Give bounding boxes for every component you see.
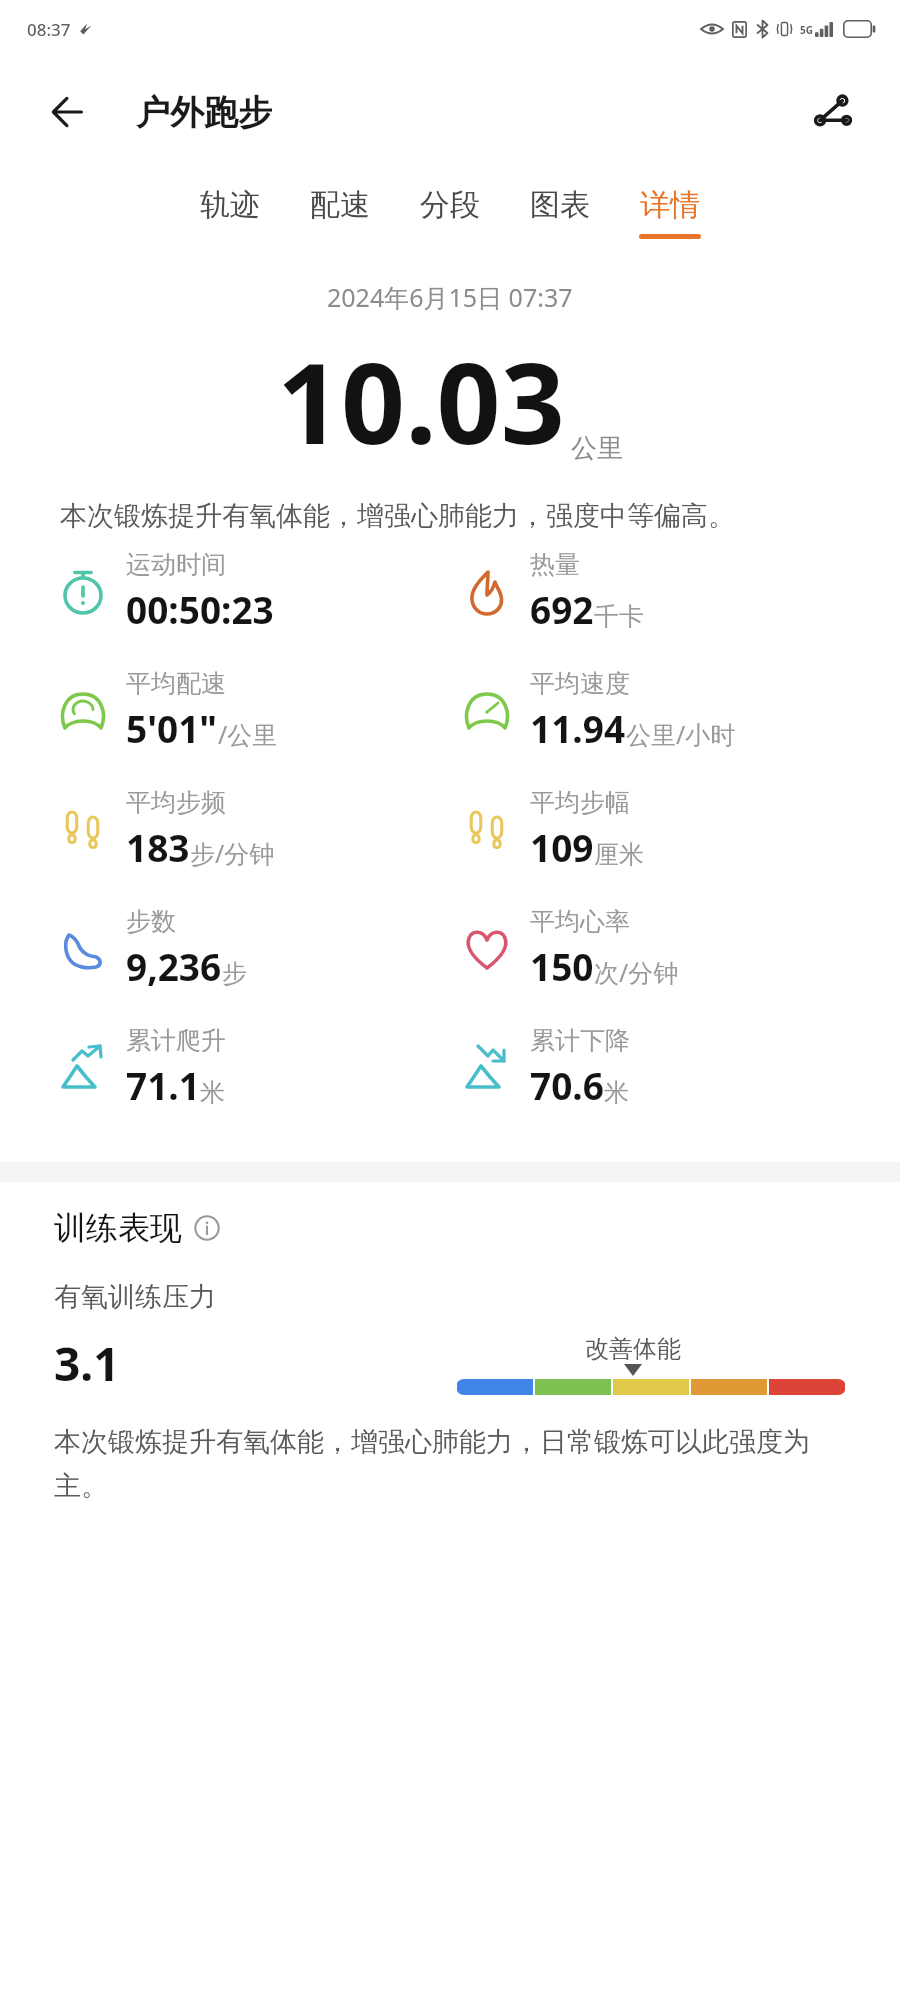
staticText: 热量	[530, 549, 580, 580]
staticText: 千卡	[594, 601, 644, 632]
staticText: 平均心率	[530, 906, 630, 937]
staticText: 2024年6月15日 07:37	[327, 280, 573, 314]
staticText: 109	[530, 822, 594, 872]
staticText: 配速	[310, 186, 370, 224]
button[interactable]: 累计下降	[458, 1025, 900, 1110]
staticText: 公里/小时	[626, 717, 736, 751]
button[interactable]: 步数	[54, 906, 450, 991]
button[interactable]: 运动时间	[54, 549, 450, 634]
staticText: 户外跑步	[136, 91, 272, 134]
button[interactable]: 热量	[458, 549, 900, 634]
staticText: 有氧训练压力	[54, 1280, 216, 1314]
staticText: 平均步频	[126, 787, 226, 818]
staticText: 公里	[571, 432, 623, 465]
button[interactable]: 分段	[395, 180, 505, 245]
button[interactable]: 平均步幅	[458, 787, 900, 872]
button[interactable]: 平均速度	[458, 668, 900, 753]
staticText: 运动时间	[126, 549, 226, 580]
staticText: 厘米	[594, 839, 644, 870]
staticText: 步/分钟	[190, 836, 275, 870]
staticText: 详情	[640, 186, 700, 224]
button[interactable]: Info	[192, 1213, 222, 1243]
button[interactable]: 平均步频	[54, 787, 450, 872]
staticText: 训练表现	[54, 1208, 182, 1248]
button[interactable]: 累计爬升	[54, 1025, 450, 1110]
staticText: 平均步幅	[530, 787, 630, 818]
staticText: 改善体能	[585, 1334, 681, 1364]
staticText: 本次锻炼提升有氧体能，增强心肺能力，日常锻炼可以此强度为主。	[54, 1425, 846, 1503]
button[interactable]: Back	[44, 86, 96, 138]
staticText: 5G	[800, 23, 813, 37]
button[interactable]: 配速	[285, 180, 395, 245]
staticText: 米	[604, 1077, 629, 1108]
staticText: 10.03	[277, 324, 565, 477]
staticText: 08:37	[27, 18, 71, 41]
button[interactable]: 轨迹	[175, 180, 285, 245]
button[interactable]: 平均配速	[54, 668, 450, 753]
staticText: 步	[222, 958, 247, 989]
staticText: 70.6	[530, 1060, 604, 1110]
staticText: 183	[126, 822, 190, 872]
staticText: 图表	[530, 186, 590, 224]
staticText: 轨迹	[200, 186, 260, 224]
staticText: /公里	[218, 717, 278, 751]
staticText: 00:50:23	[126, 584, 274, 634]
staticText: 米	[200, 1077, 225, 1108]
staticText: 累计下降	[530, 1025, 630, 1056]
button[interactable]: Share	[806, 86, 858, 138]
staticText: 3.1	[54, 1332, 120, 1395]
staticText: 累计爬升	[126, 1025, 226, 1056]
staticText: 9,236	[126, 941, 222, 991]
staticText: 本次锻炼提升有氧体能，增强心肺能力，强度中等偏高。	[60, 499, 840, 533]
staticText: 步数	[126, 906, 176, 937]
staticText: 次/分钟	[594, 955, 679, 989]
button[interactable]: 详情	[615, 180, 725, 245]
staticText: 71.1	[126, 1060, 200, 1110]
button[interactable]: 图表	[505, 180, 615, 245]
staticText: 692	[530, 584, 594, 634]
staticText: 11.94	[530, 703, 626, 753]
staticText: 平均配速	[126, 668, 226, 699]
staticText: 150	[530, 941, 594, 991]
staticText: 分段	[420, 186, 480, 224]
button[interactable]: 平均心率	[458, 906, 900, 991]
staticText: 平均速度	[530, 668, 630, 699]
staticText: 5'01"	[126, 703, 218, 753]
